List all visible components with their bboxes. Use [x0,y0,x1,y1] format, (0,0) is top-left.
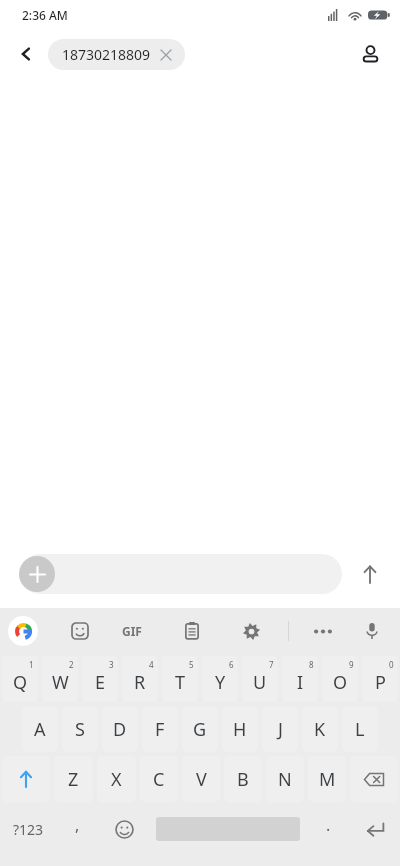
staticText: T [175,670,186,695]
staticText: X [111,767,122,792]
staticText: K [314,717,326,742]
staticText: N [278,767,292,792]
button[interactable]: D [102,706,138,752]
staticText: 18730218809 [62,45,151,64]
staticText: V [196,767,207,792]
staticText: J [278,717,283,742]
button[interactable]: Y [202,656,238,702]
button[interactable]: I [282,656,318,702]
staticText: . [326,814,331,836]
staticText: Y [215,670,226,695]
button[interactable]: R [122,656,158,702]
button[interactable]: G [182,706,218,752]
staticText: O [333,670,348,695]
button[interactable]: T [162,656,198,702]
button[interactable]: S [62,706,98,752]
button[interactable]: L [342,706,378,752]
staticText: 6 [229,659,234,670]
staticText: C [153,767,165,792]
button[interactable]: Clipboard [172,611,212,651]
button[interactable]: Google [8,616,38,646]
staticText: 0 [389,659,394,670]
button[interactable] [20,554,342,594]
staticText: GIF [122,623,142,639]
button[interactable]: Contact [350,34,390,74]
button[interactable]: GIF [112,611,152,651]
button[interactable]: C [140,756,178,802]
button[interactable]: B [224,756,262,802]
button[interactable]: M [308,756,346,802]
staticText: U [253,670,267,695]
button[interactable]: A [22,706,58,752]
staticText: D [113,717,127,742]
button[interactable]: W [42,656,78,702]
staticText: 2:36 AM [22,7,68,23]
staticText: , [75,814,80,836]
button[interactable]: J [262,706,298,752]
staticText: E [95,670,106,695]
staticText: P [375,670,386,695]
staticText: 3 [109,659,114,670]
button[interactable]: Settings [231,611,271,651]
button[interactable]: Z [54,756,93,802]
button[interactable]: P [362,656,398,702]
staticText: 7 [269,659,274,670]
button[interactable]: Voice input [352,611,392,651]
staticText: L [355,717,365,742]
button[interactable]: Q [2,656,38,702]
staticText: I [297,670,304,695]
button[interactable]: U [242,656,278,702]
button[interactable]: More [303,611,343,651]
button[interactable]: F [142,706,178,752]
staticText: R [134,670,146,695]
button[interactable]: Send [349,553,391,595]
button[interactable]: ?123 [0,804,56,854]
button[interactable]: Back [6,34,46,74]
button[interactable]: K [302,706,338,752]
staticText: 4 [149,659,154,670]
staticText: M [319,767,336,792]
button[interactable]: Backspace [350,756,398,802]
staticText: Z [68,767,79,792]
staticText: A [34,717,46,742]
button[interactable]: X [97,756,136,802]
staticText: 1 [29,659,34,670]
button[interactable]: E [82,656,118,702]
button[interactable]: Enter [350,804,400,854]
staticText: W [52,670,69,695]
staticText: ?123 [13,820,44,839]
button[interactable]: Shift [2,756,50,802]
staticText: 5 [189,659,194,670]
button[interactable]: Emoji [98,804,150,854]
button[interactable]: N [266,756,304,802]
button[interactable]: Add attachment [19,556,55,592]
button[interactable]: H [222,706,258,752]
staticText: 8 [309,659,314,670]
staticText: S [75,717,85,742]
button[interactable]: Stickers [60,611,100,651]
button[interactable]: V [182,756,220,802]
staticText: 9 [349,659,354,670]
button[interactable]: O [322,656,358,702]
staticText: G [193,717,207,742]
staticText: 2 [69,659,74,670]
staticText: Q [13,670,28,695]
button[interactable]: . [306,804,350,854]
staticText: F [155,717,165,742]
button[interactable]: 18730218809 [48,39,185,70]
staticText: H [233,717,247,742]
staticText: B [237,767,249,792]
button[interactable]: , [56,804,98,854]
